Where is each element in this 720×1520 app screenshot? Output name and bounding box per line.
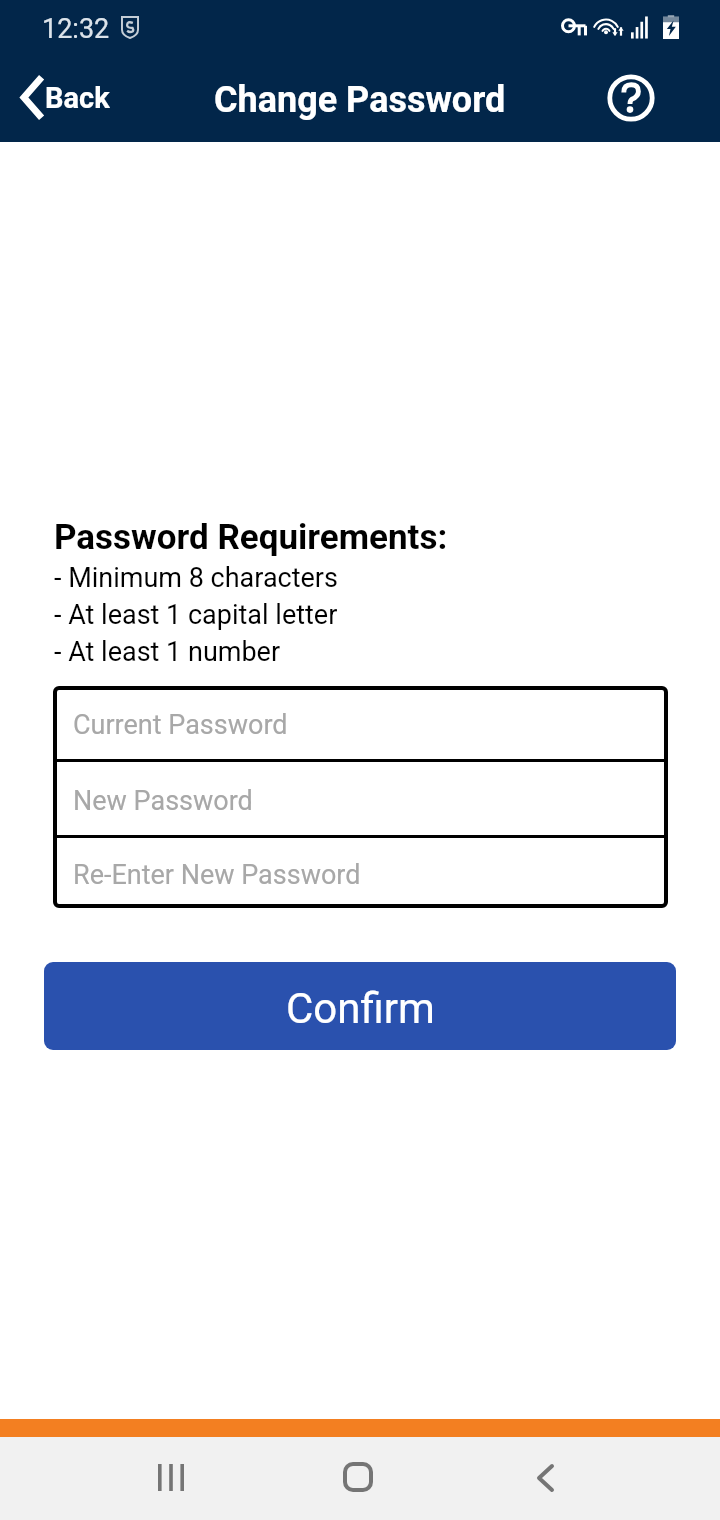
staticText: Back: [45, 81, 110, 115]
staticText: Change Password: [214, 79, 506, 121]
staticText: New Password: [73, 785, 253, 817]
button[interactable]: Home: [316, 1441, 399, 1512]
staticText: Re-Enter New Password: [73, 859, 361, 891]
staticText: 12:32: [42, 13, 110, 45]
staticText: Current Password: [73, 709, 288, 741]
staticText: Password Requirements:: [54, 517, 448, 558]
button[interactable]: Back: [504, 1442, 587, 1513]
button[interactable]: New Password: [53, 762, 668, 835]
button[interactable]: Back: [8, 70, 122, 125]
button[interactable]: Current Password: [53, 686, 668, 759]
button[interactable]: Help: [599, 66, 663, 130]
button[interactable]: Recents: [129, 1442, 212, 1513]
button[interactable]: Re-Enter New Password: [53, 838, 668, 908]
button[interactable]: Confirm: [44, 962, 676, 1050]
staticText: - Minimum 8 characters - At least 1 capi…: [54, 558, 338, 669]
staticText: Confirm: [286, 984, 435, 1033]
